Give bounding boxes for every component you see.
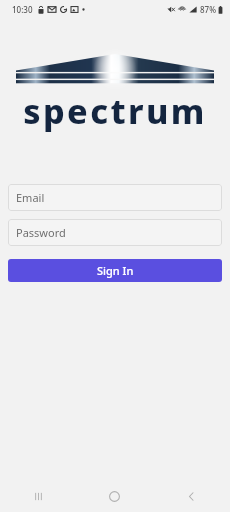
button[interactable]: Password (8, 219, 222, 246)
button[interactable]: Home (76, 480, 153, 512)
button[interactable]: Recent apps (0, 480, 76, 512)
button[interactable]: Email (8, 184, 222, 211)
button[interactable]: Back (153, 480, 230, 512)
staticText: Email (16, 190, 45, 205)
staticText: Password (16, 225, 66, 240)
staticText: 87% (200, 4, 216, 15)
button[interactable]: Sign In (8, 259, 222, 282)
staticText: Sign In (97, 263, 134, 278)
staticText: spectrum (23, 88, 207, 134)
staticText: 10:30 (12, 4, 33, 15)
